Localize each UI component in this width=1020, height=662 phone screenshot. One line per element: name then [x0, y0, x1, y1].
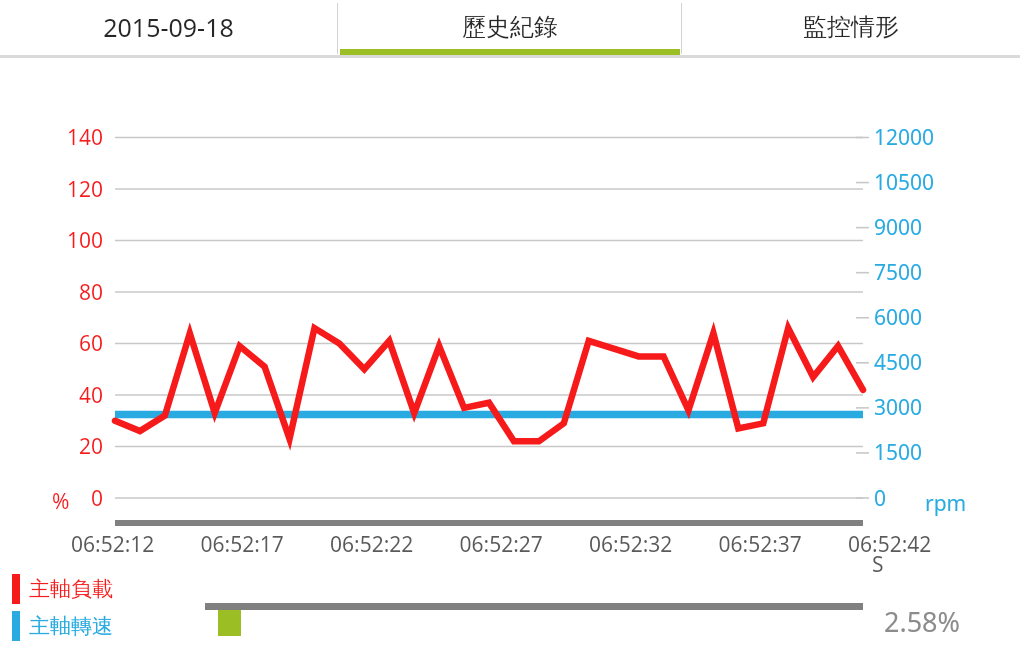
- button[interactable]: 2015-09-18: [0, 0, 337, 54]
- button[interactable]: 主軸轉速: [12, 611, 113, 641]
- staticText: 監控情形: [803, 12, 899, 42]
- staticText: 2.58%: [884, 603, 961, 640]
- staticText: 歷史紀錄: [462, 12, 558, 42]
- staticText: 主軸轉速: [29, 613, 113, 639]
- button[interactable]: 歷史紀錄: [338, 0, 681, 54]
- staticText: 2015-09-18: [103, 10, 234, 44]
- button[interactable]: 監控情形: [682, 0, 1020, 54]
- button[interactable]: 主軸負載: [12, 574, 113, 604]
- staticText: 主軸負載: [29, 576, 113, 602]
